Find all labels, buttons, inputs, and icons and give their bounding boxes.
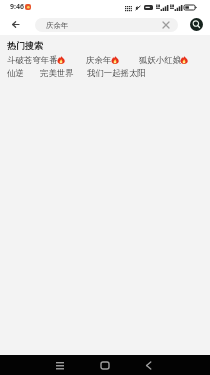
button[interactable]: 庆余年 [86, 55, 120, 65]
button[interactable]: Back [6, 15, 24, 33]
button[interactable]: Back [134, 355, 163, 375]
button[interactable]: Home [90, 355, 119, 375]
button[interactable]: 完美世界 [40, 68, 74, 78]
staticText: 斗破苍穹年番 [7, 55, 58, 65]
staticText: 庆余年 [86, 55, 112, 65]
button[interactable]: 仙逆 [7, 68, 24, 78]
button[interactable]: Search [190, 18, 203, 31]
staticText: 我们一起摇太阳 [87, 68, 146, 78]
button[interactable]: 狐妖小红娘 [139, 55, 189, 65]
staticText: 狐妖小红娘 [139, 55, 181, 65]
button[interactable]: 斗破苍穹年番 [7, 55, 66, 65]
staticText: 庆余年 [46, 21, 69, 30]
button[interactable]: 我们一起摇太阳 [87, 68, 146, 78]
staticText: 仙逆 [7, 68, 24, 78]
button[interactable]: Recent apps [45, 355, 74, 375]
button[interactable]: 庆余年 [35, 18, 178, 32]
button[interactable]: Clear [159, 18, 172, 32]
staticText: 热门搜索 [7, 40, 43, 50]
staticText: 9:46 [10, 2, 24, 12]
staticText: 完美世界 [40, 68, 74, 78]
